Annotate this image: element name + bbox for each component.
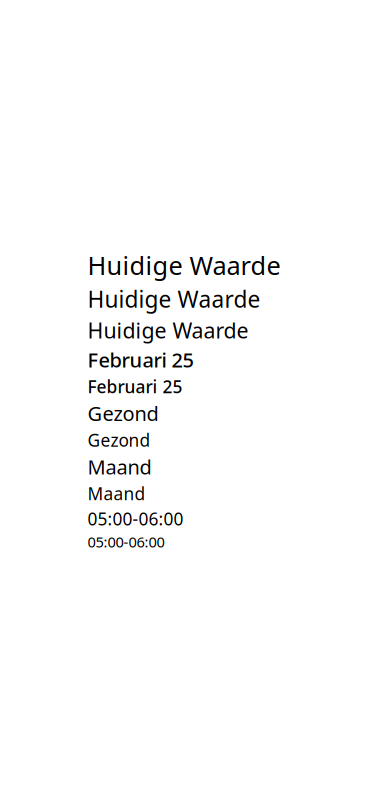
staticText: Gezond: [87, 400, 158, 427]
staticText: Huidige Waarde: [87, 316, 248, 344]
staticText: Maand: [87, 482, 145, 505]
staticText: Februari 25: [87, 346, 193, 373]
staticText: 05:00-06:00: [87, 532, 164, 552]
staticText: Februari 25: [87, 375, 182, 398]
staticText: Gezond: [87, 429, 150, 452]
staticText: Huidige Waarde: [87, 284, 260, 314]
staticText: Huidige Waarde: [87, 248, 280, 282]
staticText: Maand: [87, 454, 151, 480]
staticText: 05:00-06:00: [87, 507, 183, 530]
